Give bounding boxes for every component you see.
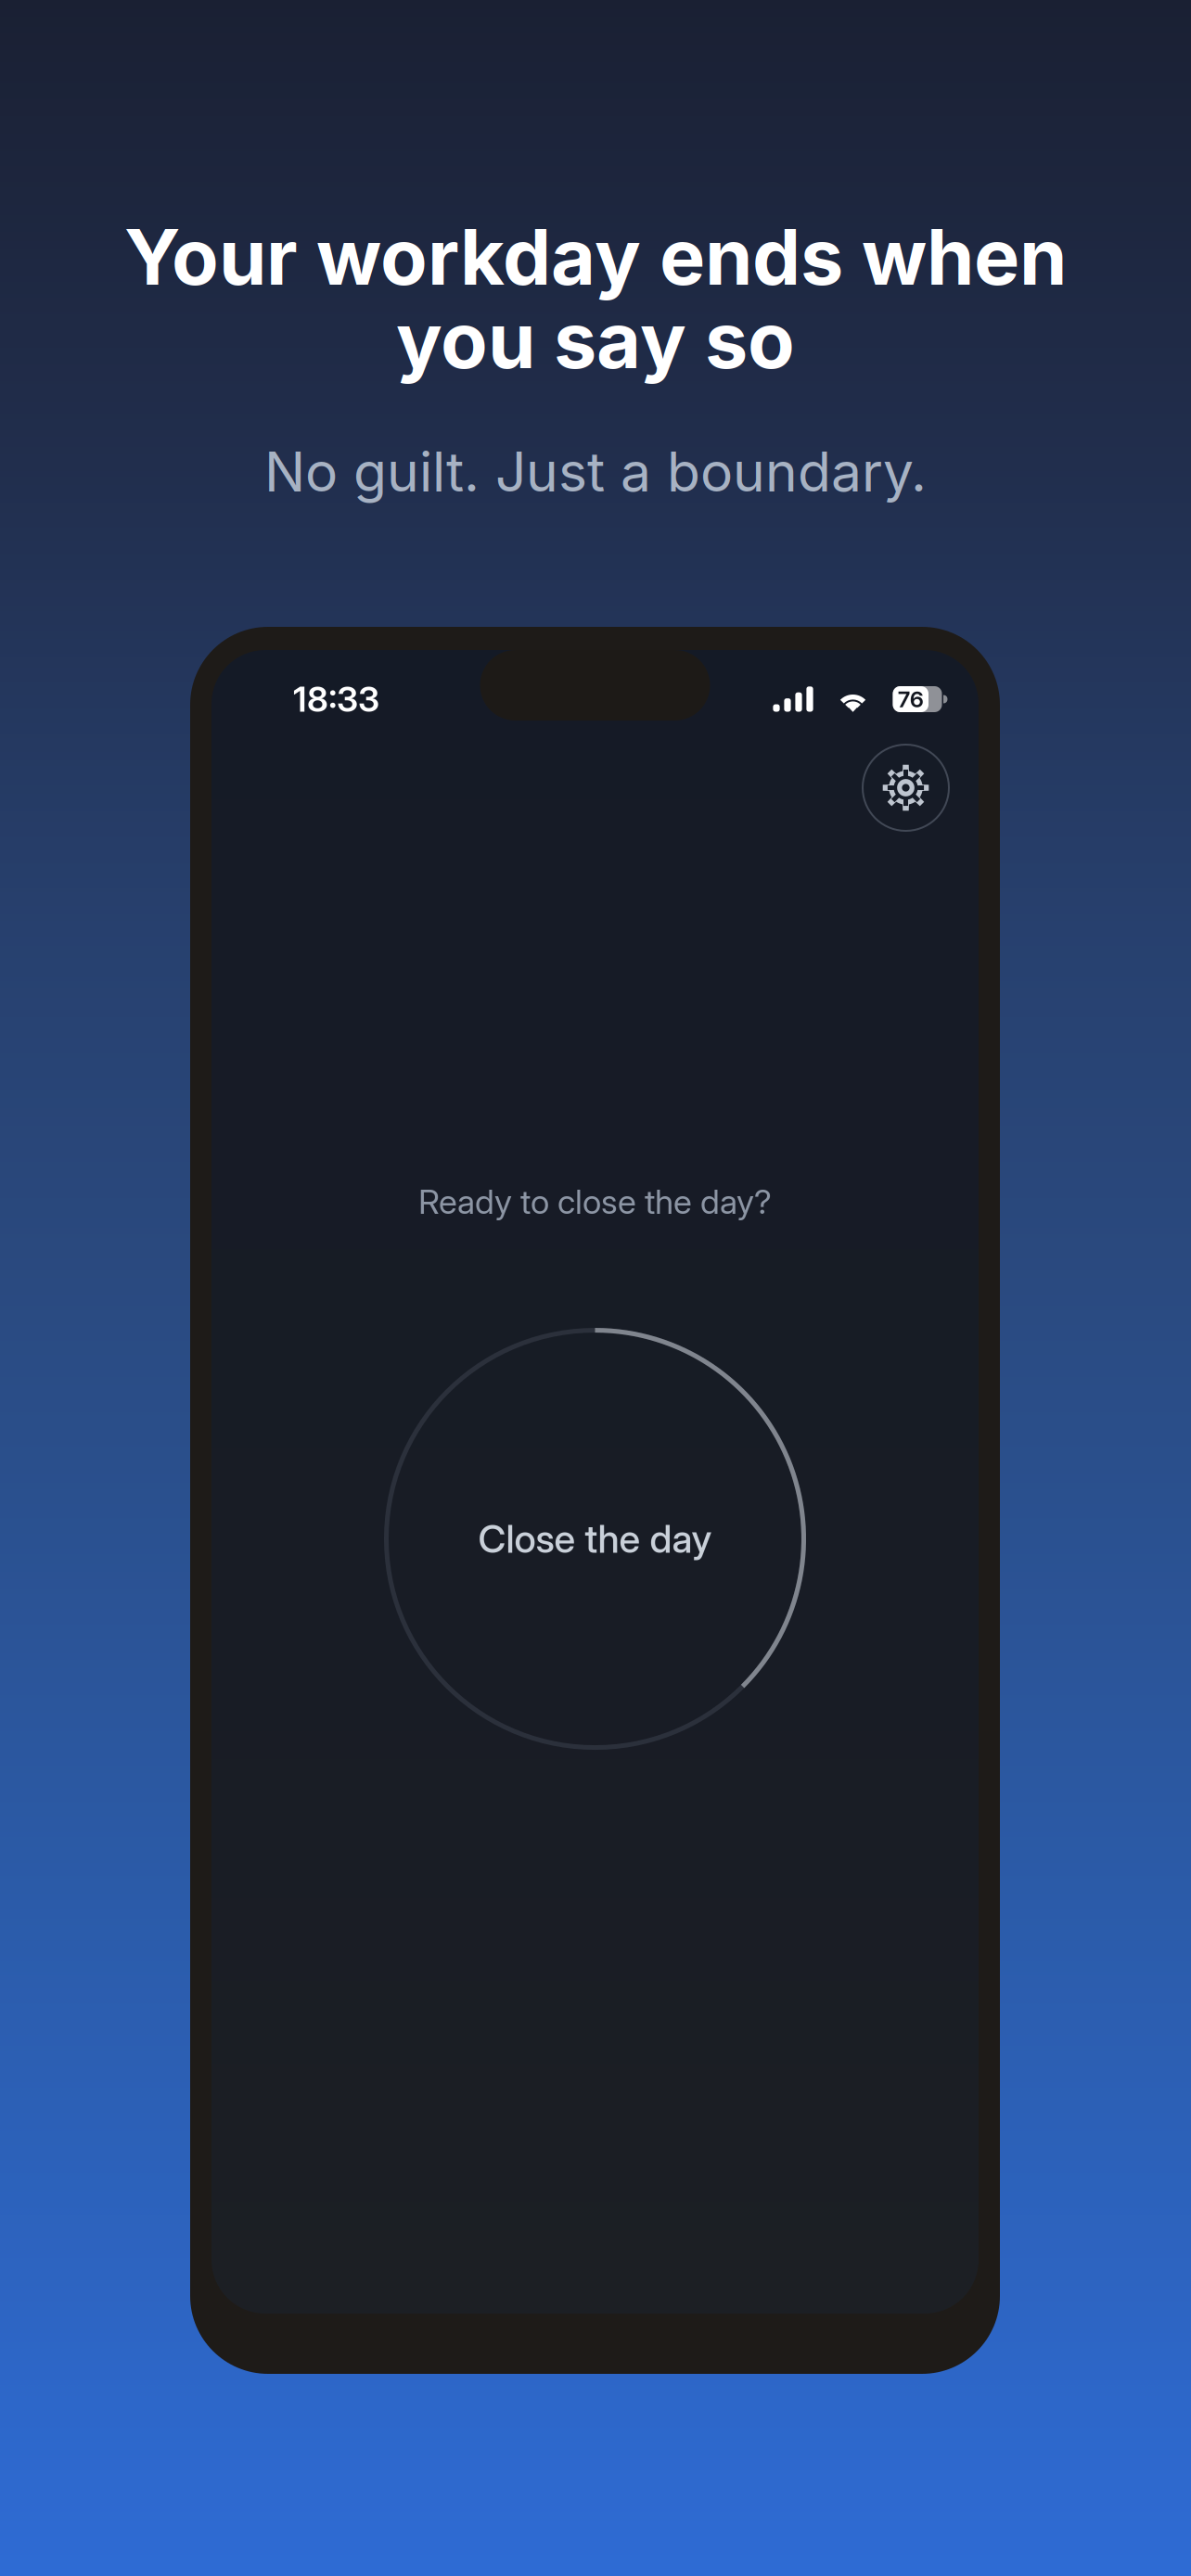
button[interactable]: Close the day xyxy=(386,1330,804,1748)
staticText: you say so xyxy=(396,294,795,387)
staticText: 76 xyxy=(898,686,924,713)
staticText: Ready to close the day? xyxy=(418,1181,772,1222)
staticText: 18:33 xyxy=(293,678,379,720)
staticText: Your workday ends when xyxy=(124,210,1067,303)
staticText: Close the day xyxy=(478,1516,712,1562)
staticText: No guilt. Just a boundary. xyxy=(264,439,927,504)
button[interactable]: Settings xyxy=(863,745,949,831)
